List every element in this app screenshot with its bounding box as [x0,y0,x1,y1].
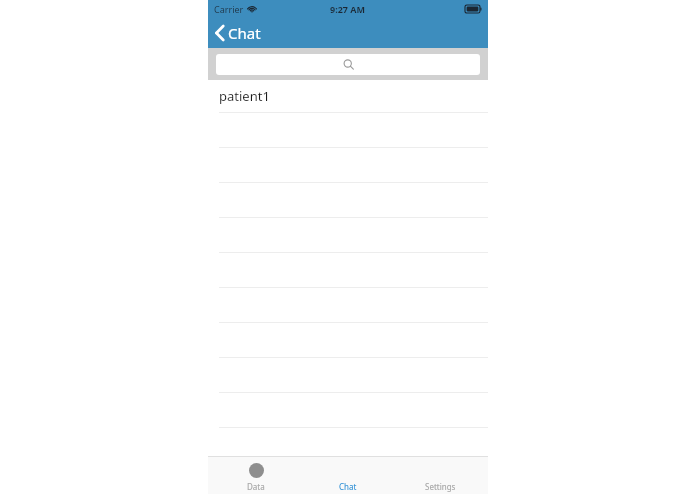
staticText: Data [247,481,265,492]
staticText: Carrier [214,3,244,15]
staticText: Settings [425,481,456,492]
button[interactable]: Chat [304,457,392,494]
button[interactable]: Data [212,457,300,494]
staticText: 9:27 AM [330,3,366,15]
button[interactable]: Settings [396,457,484,494]
staticText: Chat [339,481,357,492]
staticText: patient1 [219,87,270,105]
button[interactable]: Back [208,19,271,47]
staticText: Chat [228,23,261,43]
other: Back [215,25,224,41]
button[interactable]: patient1 [208,80,488,112]
button[interactable]: Search [216,54,480,75]
